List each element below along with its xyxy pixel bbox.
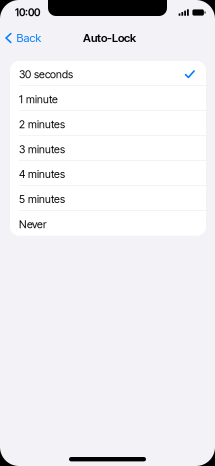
staticText: Auto-Lock xyxy=(83,31,136,45)
button[interactable]: 5 minutes xyxy=(10,186,206,211)
staticText: 10:00 xyxy=(15,6,40,19)
button[interactable]: 1 minute xyxy=(10,86,206,111)
button[interactable]: 2 minutes xyxy=(10,111,206,136)
staticText: 3 minutes xyxy=(19,143,65,156)
button[interactable]: 30 seconds xyxy=(10,61,206,86)
staticText: Never xyxy=(19,218,46,231)
staticText: Back xyxy=(17,31,42,45)
button[interactable]: 4 minutes xyxy=(10,161,206,186)
button[interactable]: Never xyxy=(10,211,206,236)
staticText: 2 minutes xyxy=(19,118,65,131)
staticText: 30 seconds xyxy=(19,68,73,81)
button[interactable]: 3 minutes xyxy=(10,136,206,161)
staticText: 5 minutes xyxy=(19,193,65,206)
button[interactable]: Back xyxy=(0,26,48,50)
staticText: 1 minute xyxy=(19,93,58,106)
staticText: 4 minutes xyxy=(19,168,65,181)
